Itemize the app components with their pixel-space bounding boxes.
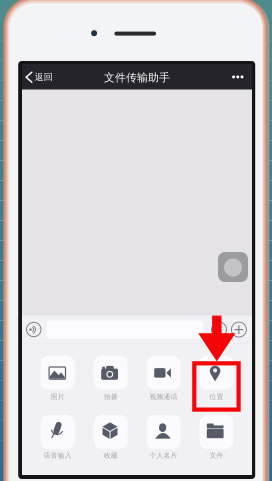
staticText: 文件传输助手 — [104, 71, 170, 84]
staticText: 文件 — [209, 451, 223, 460]
staticText: 位置 — [209, 392, 223, 401]
staticText: 照片 — [51, 392, 65, 401]
staticText: 拍摄 — [104, 392, 118, 401]
staticText: 收藏 — [104, 451, 118, 460]
button[interactable]: More — [0, 0, 272, 481]
staticText: 返回 — [35, 71, 53, 83]
staticText: 个人名片 — [150, 451, 178, 460]
button[interactable]: 返回 — [24, 71, 53, 83]
button[interactable]: Back — [0, 0, 272, 481]
staticText: 语音输入 — [44, 451, 72, 460]
staticText: 视频通话 — [150, 392, 178, 401]
